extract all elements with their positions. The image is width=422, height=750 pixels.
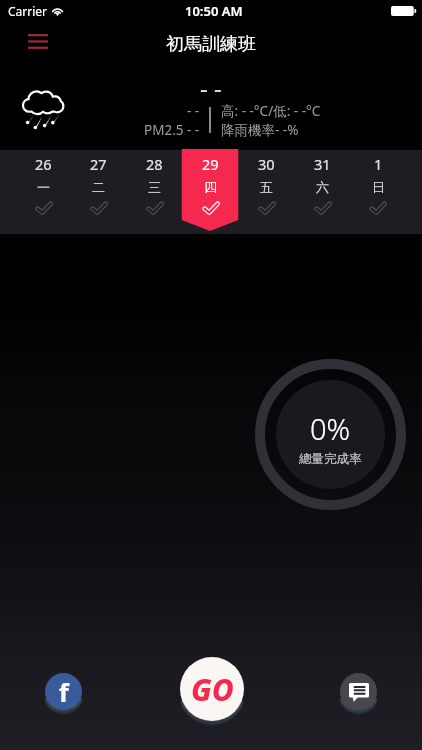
- staticText: 28: [146, 154, 163, 174]
- staticText: f: [59, 675, 69, 709]
- staticText: GO: [191, 669, 234, 710]
- button[interactable]: Chat: [340, 673, 377, 710]
- staticText: 1: [374, 154, 383, 174]
- staticText: 一: [37, 179, 50, 195]
- staticText: 31: [314, 154, 331, 174]
- staticText: 三: [148, 179, 161, 195]
- staticText: 初馬訓練班: [166, 33, 256, 56]
- staticText: Carrier: [8, 3, 48, 19]
- button[interactable]: 1: [350, 150, 406, 234]
- staticText: 降雨機率- -%: [221, 121, 299, 139]
- staticText: 高: - -°C/低: - -°C: [221, 102, 321, 120]
- staticText: PM2.5 - -: [144, 121, 200, 139]
- button[interactable]: 31: [294, 150, 350, 234]
- staticText: 26: [35, 154, 52, 174]
- staticText: 29: [202, 154, 219, 174]
- staticText: 10:50 AM: [185, 2, 243, 20]
- staticText: 四: [204, 179, 217, 195]
- staticText: 30: [258, 154, 275, 174]
- button[interactable]: Facebook: [45, 673, 82, 710]
- button[interactable]: 28: [126, 150, 182, 234]
- button[interactable]: GO: [180, 657, 244, 721]
- button[interactable]: 27: [71, 150, 126, 234]
- staticText: - -: [187, 102, 200, 120]
- staticText: 27: [90, 154, 107, 174]
- staticText: 二: [92, 179, 105, 195]
- button[interactable]: 30: [238, 150, 294, 234]
- staticText: - -: [200, 71, 222, 104]
- button[interactable]: 26: [16, 150, 71, 234]
- staticText: 總量完成率: [299, 451, 362, 467]
- staticText: 0%: [310, 409, 351, 448]
- staticText: 五: [260, 179, 273, 195]
- staticText: 六: [316, 179, 329, 195]
- button[interactable]: Menu: [18, 22, 57, 60]
- button[interactable]: 29: [182, 150, 238, 234]
- staticText: 日: [372, 179, 385, 195]
